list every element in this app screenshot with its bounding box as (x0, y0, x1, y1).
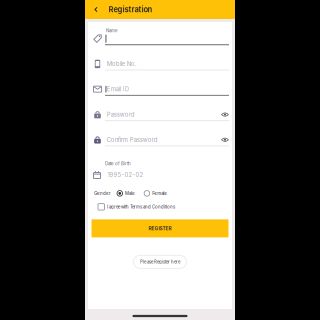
staticText: Mobile No. (107, 60, 137, 67)
button[interactable]: Back (90, 0, 101, 19)
staticText: I agree with Terms and Conditions (107, 204, 175, 209)
staticText: Gender (94, 191, 111, 196)
button[interactable]: I agree with Terms and Conditions (98, 204, 175, 210)
staticText: 1995-02-02 (107, 171, 143, 178)
staticText: REGISTER (148, 225, 171, 231)
staticText: Female (152, 191, 167, 196)
staticText: Please Register here (140, 259, 180, 264)
staticText: Male (125, 191, 135, 196)
staticText: Name (106, 28, 117, 33)
staticText: Confirm Password (107, 136, 158, 143)
staticText: Password (107, 111, 135, 118)
staticText: Date of Birth (105, 161, 131, 166)
button[interactable]: REGISTER (91, 219, 228, 237)
staticText: Email ID (107, 86, 129, 93)
staticText: Registration (108, 5, 151, 14)
